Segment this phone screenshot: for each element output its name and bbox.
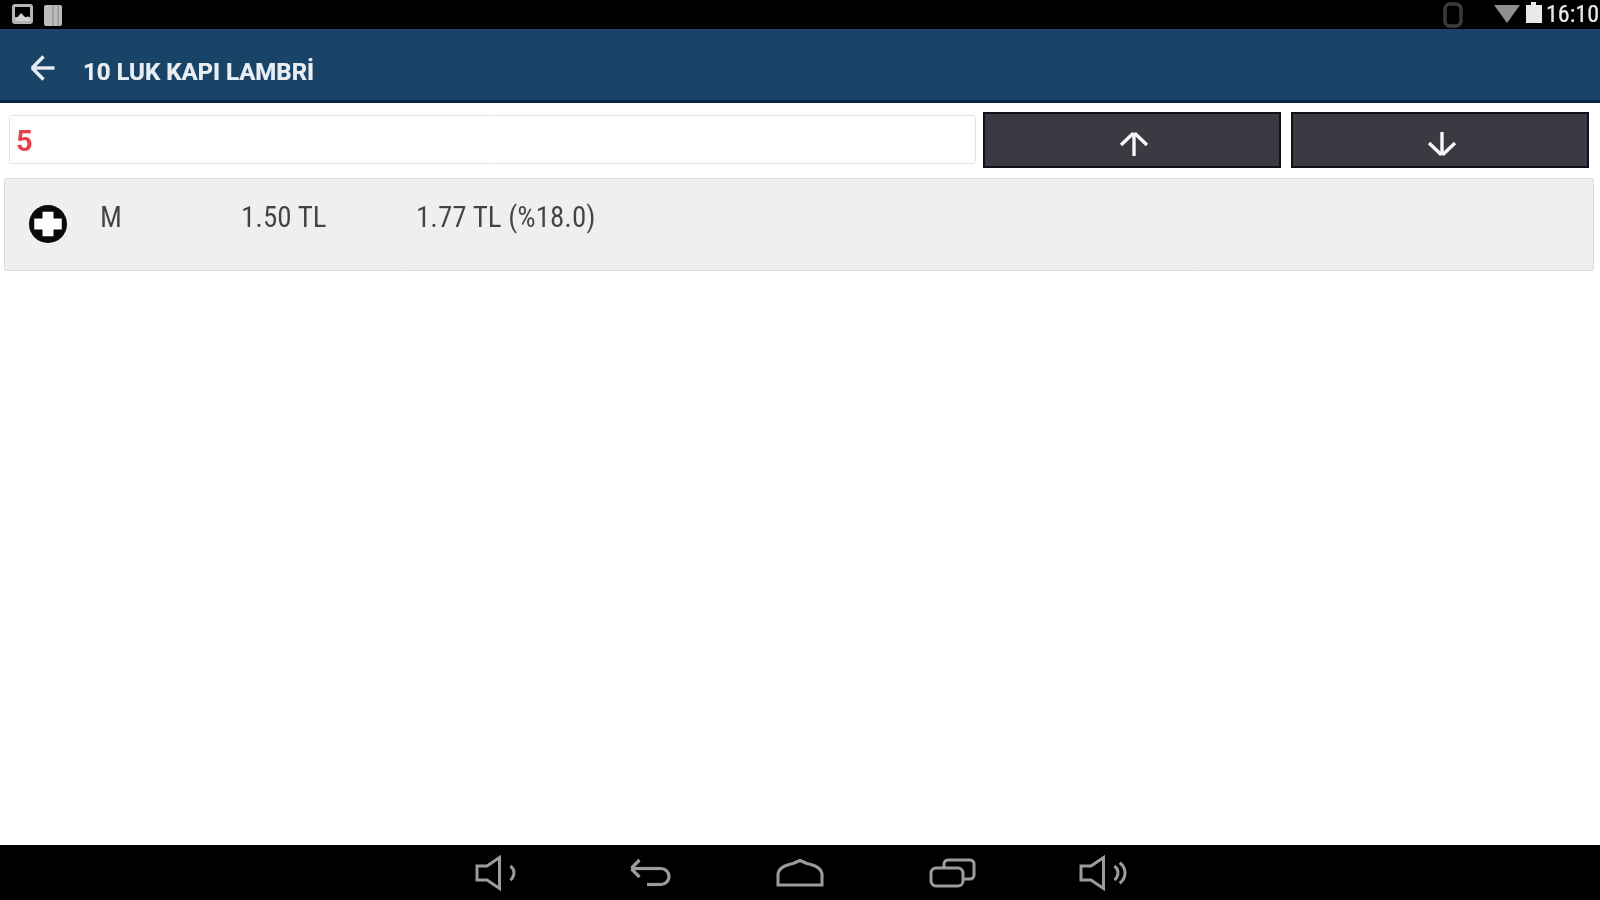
button[interactable]: Back xyxy=(15,29,73,100)
button[interactable]: Back xyxy=(600,845,700,900)
staticText: 16:10 xyxy=(1546,0,1599,28)
button[interactable]: Scroll down xyxy=(1293,114,1587,166)
staticText: 10 LUK KAPI LAMBRİ xyxy=(83,58,315,86)
staticText: M xyxy=(100,200,122,234)
button[interactable]: Home xyxy=(750,845,850,900)
staticText: 1.50 TL xyxy=(241,200,327,234)
button[interactable]: M xyxy=(4,178,1594,271)
button[interactable]: Scroll up xyxy=(985,114,1279,166)
button[interactable]: Volume down xyxy=(446,845,546,900)
staticText: 5 xyxy=(16,124,33,158)
staticText: 1.77 TL (%18.0) xyxy=(416,200,596,234)
button[interactable]: 5 xyxy=(9,115,976,164)
button[interactable]: Recents xyxy=(902,845,1002,900)
button[interactable]: Volume up xyxy=(1050,845,1150,900)
